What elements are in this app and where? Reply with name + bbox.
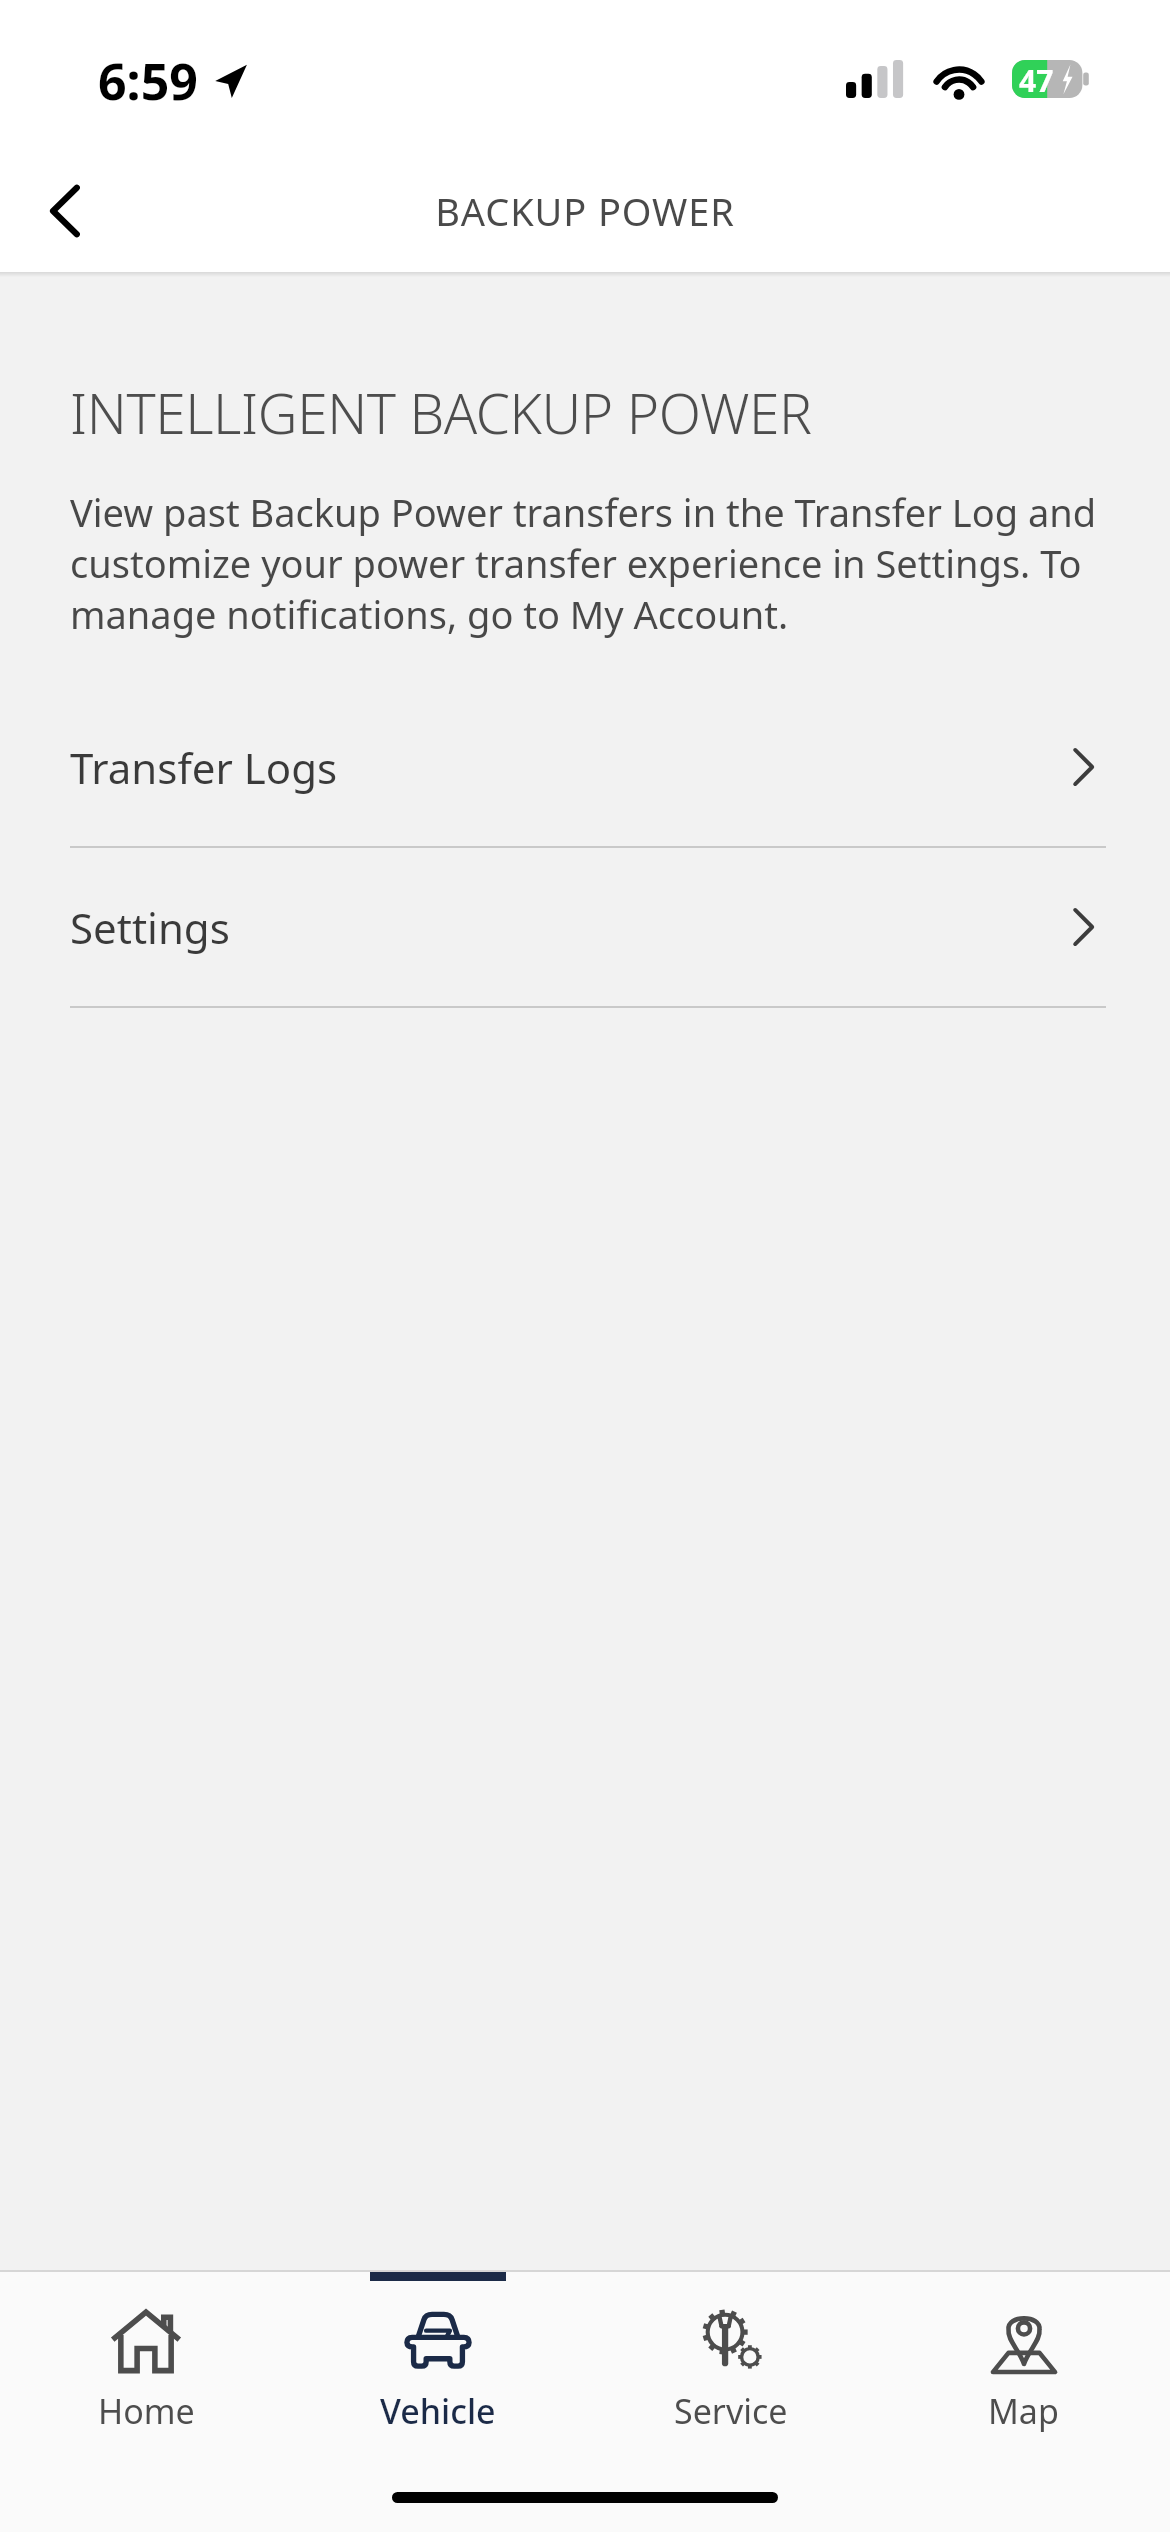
button[interactable]: Back xyxy=(18,163,114,259)
button[interactable]: Map xyxy=(877,2272,1170,2462)
button[interactable]: Transfer Logs xyxy=(0,688,1170,846)
button[interactable]: Service xyxy=(584,2272,877,2462)
button[interactable]: Home xyxy=(0,2272,292,2462)
staticText: Transfer Logs xyxy=(70,739,1060,796)
button[interactable]: Vehicle xyxy=(292,2272,584,2462)
staticText: INTELLIGENT BACKUP POWER xyxy=(70,375,812,450)
staticText: BACKUP POWER xyxy=(435,185,735,237)
staticText: Vehicle xyxy=(380,2388,496,2434)
staticText: Map xyxy=(988,2388,1059,2434)
staticText: 47 xyxy=(1019,60,1054,98)
other: Battery 47 percent, charging xyxy=(1012,60,1092,98)
staticText: View past Backup Power transfers in the … xyxy=(70,486,1106,640)
staticText: Service xyxy=(674,2388,788,2434)
staticText: Settings xyxy=(70,899,1060,956)
staticText: Home xyxy=(98,2388,195,2434)
other: Cellular signal xyxy=(846,60,904,98)
other: Wi-Fi xyxy=(932,59,986,99)
staticText: 6:59 xyxy=(98,47,198,115)
button[interactable]: Settings xyxy=(0,848,1170,1006)
